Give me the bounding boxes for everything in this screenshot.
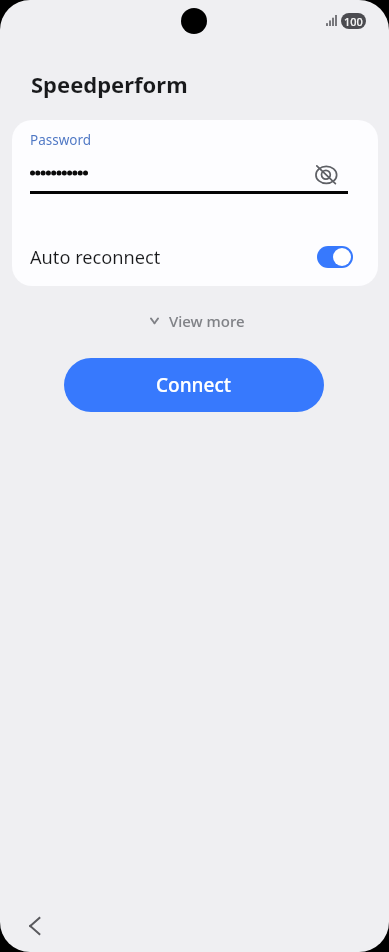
staticText: 100 [344, 14, 363, 29]
button[interactable]: Show password [312, 160, 340, 188]
button[interactable]: View more [140, 306, 255, 336]
staticText: Connect [156, 372, 232, 398]
staticText: Auto reconnect [30, 245, 161, 270]
button[interactable]: Back [17, 908, 53, 944]
staticText: Speedperform [31, 69, 188, 99]
staticText: View more [169, 311, 245, 331]
button[interactable]: Connect [64, 358, 324, 412]
staticText: Password [30, 131, 92, 149]
button[interactable]: Auto reconnect [12, 234, 378, 280]
